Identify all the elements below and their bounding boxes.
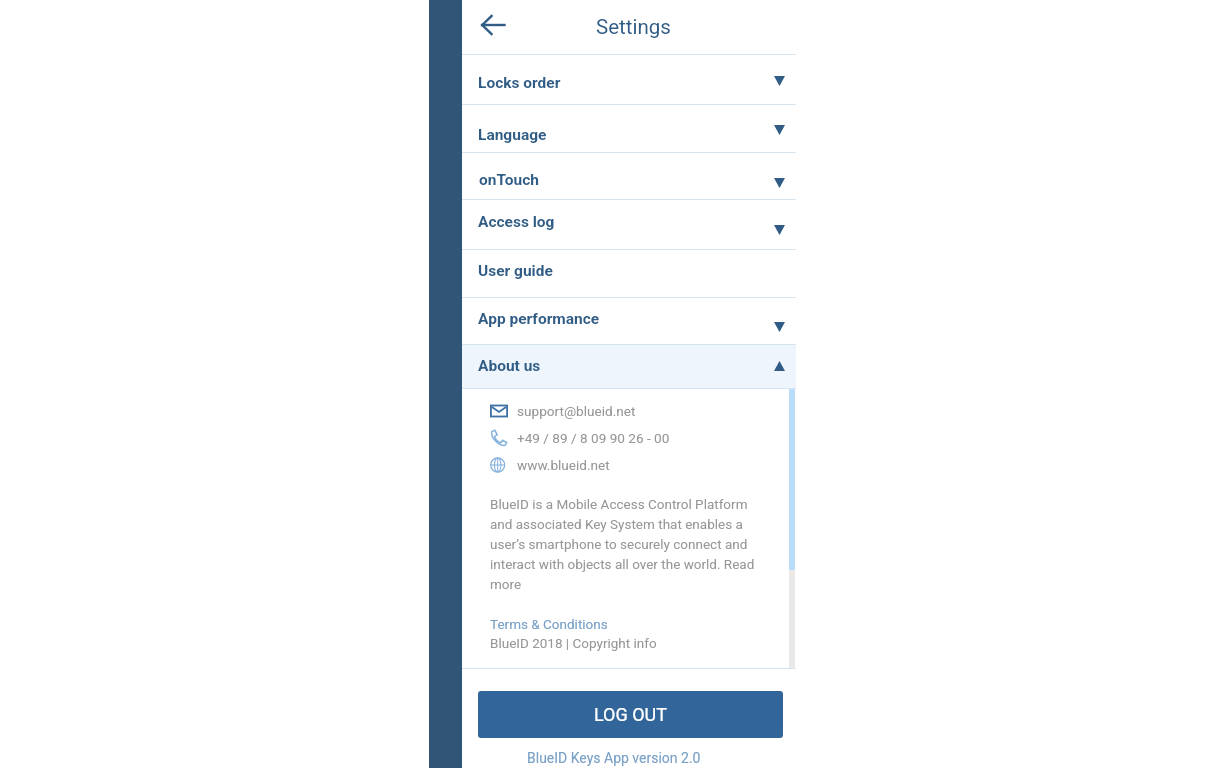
staticText: Locks order <box>478 74 561 92</box>
button[interactable]: App performance <box>462 298 796 344</box>
staticText: BlueID is a Mobile Access Control Platfo… <box>490 496 764 592</box>
button[interactable]: BlueID Keys App version 2.0 <box>527 750 701 766</box>
staticText: About us <box>478 357 541 375</box>
button[interactable]: User guide <box>462 250 796 297</box>
staticText: App performance <box>478 310 600 328</box>
staticText: Language <box>478 126 547 144</box>
staticText: User guide <box>478 262 553 280</box>
staticText: onTouch <box>479 171 539 189</box>
button[interactable]: LOG OUT <box>478 691 783 738</box>
staticText: +49 / 89 / 8 09 90 26 - 00 <box>517 430 670 446</box>
staticText: Access log <box>478 213 555 231</box>
button[interactable]: onTouch <box>462 153 796 199</box>
staticText: BlueID 2018 | Copyright info <box>490 635 657 651</box>
button[interactable]: Back <box>471 3 515 47</box>
button[interactable]: Language <box>462 105 796 152</box>
button[interactable]: About us <box>462 345 796 388</box>
staticText: www.blueid.net <box>517 457 610 473</box>
button[interactable]: Locks order <box>462 55 796 104</box>
button[interactable]: Terms & Conditions <box>490 616 608 632</box>
button[interactable]: Access log <box>462 200 796 249</box>
staticText: Settings <box>596 15 671 39</box>
staticText: LOG OUT <box>594 704 668 725</box>
staticText: support@blueid.net <box>517 403 636 419</box>
